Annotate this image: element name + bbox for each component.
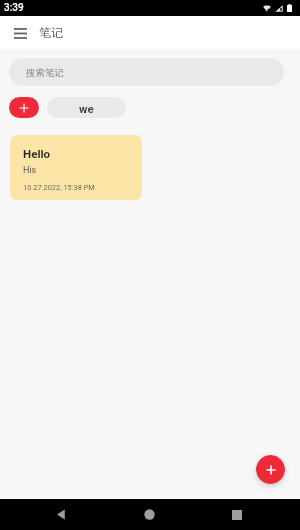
staticText: Hello (23, 147, 51, 161)
button[interactable]: Back (41, 499, 81, 530)
staticText: 笔记 (39, 25, 63, 40)
button[interactable]: Recents (217, 499, 257, 530)
staticText: His (23, 165, 37, 176)
staticText: 3:39 (4, 2, 24, 14)
button[interactable]: Hello (10, 135, 142, 200)
button[interactable]: 搜索笔记 (9, 58, 284, 86)
staticText: 搜索笔记 (26, 67, 64, 79)
staticText: we (79, 102, 94, 115)
button[interactable]: Menu (9, 20, 31, 46)
button[interactable]: Add tag (9, 97, 39, 118)
staticText: 10.27.2022, 15:38 PM (23, 183, 95, 192)
button[interactable]: we (47, 97, 126, 118)
button[interactable]: Add note (256, 455, 285, 484)
button[interactable]: Home (129, 499, 169, 530)
